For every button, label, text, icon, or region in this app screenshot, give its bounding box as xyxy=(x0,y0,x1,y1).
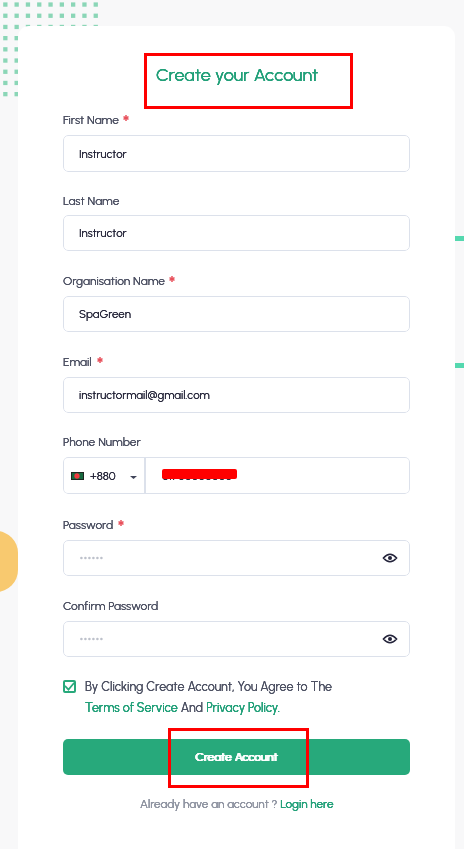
staticText: +880 xyxy=(90,469,116,483)
staticText: Confirm Password xyxy=(63,599,159,613)
staticText: Terms of Service And Privacy Policy. xyxy=(85,700,281,715)
staticText: Last Name xyxy=(63,194,120,208)
staticText: First Name xyxy=(63,113,119,127)
staticText: instructormail@gmail.com xyxy=(79,388,210,402)
staticText: Last Name xyxy=(63,194,120,208)
staticText: 01700000000 xyxy=(162,469,233,483)
staticText: Already have an account ? Login here xyxy=(140,797,334,811)
button[interactable]: Toggle password visibility xyxy=(378,627,402,651)
staticText: Password xyxy=(63,518,114,532)
button[interactable]: Toggle password visibility xyxy=(378,546,402,570)
staticText: Instructor xyxy=(79,147,127,161)
button[interactable]: Select country code xyxy=(63,457,145,494)
staticText: Create your Account xyxy=(156,64,319,86)
staticText: Create Account xyxy=(195,750,278,764)
staticText: Password xyxy=(63,518,114,532)
staticText: SpaGreen xyxy=(79,307,131,321)
staticText: Organisation Name xyxy=(63,274,165,288)
staticText: By Clicking Create Account, You Agree to… xyxy=(85,679,332,694)
staticText: Terms of Service And Privacy Policy. xyxy=(85,700,281,715)
staticText: Create your Account xyxy=(156,64,319,86)
staticText: Already have an account ? Login here xyxy=(140,797,334,811)
button[interactable]: 01700000000 xyxy=(145,457,410,494)
staticText: Create Account xyxy=(195,750,278,764)
staticText: By Clicking Create Account, You Agree to… xyxy=(85,679,332,694)
staticText: Organisation Name xyxy=(63,274,165,288)
staticText: Confirm Password xyxy=(63,599,159,613)
button[interactable]: Already have an account ? Login here xyxy=(140,797,334,811)
staticText: Create your Account xyxy=(156,64,319,86)
button[interactable]: instructormail@gmail.com xyxy=(63,377,410,413)
button[interactable]: Instructor xyxy=(63,215,410,251)
staticText: Instructor xyxy=(79,147,127,161)
staticText: Already have an account ? Login here xyxy=(140,797,334,811)
staticText: Confirm Password xyxy=(63,599,159,613)
staticText: Phone Number xyxy=(63,435,141,449)
staticText: +880 xyxy=(90,469,116,483)
staticText: Instructor xyxy=(79,147,127,161)
button[interactable]: Create Account xyxy=(63,739,410,775)
staticText: First Name xyxy=(63,113,119,127)
staticText: Phone Number xyxy=(63,435,141,449)
staticText: SpaGreen xyxy=(79,307,131,321)
staticText: instructormail@gmail.com xyxy=(79,388,210,402)
button[interactable]: Agree to terms checkbox xyxy=(63,680,76,693)
staticText: Instructor xyxy=(79,226,127,240)
staticText: instructormail@gmail.com xyxy=(79,388,210,402)
staticText: Terms of Service And Privacy Policy. xyxy=(85,700,281,715)
staticText: First Name xyxy=(63,113,119,127)
button[interactable]: Terms of Service And Privacy Policy. xyxy=(85,700,281,715)
staticText: Email xyxy=(63,355,92,369)
staticText: Email xyxy=(63,355,92,369)
button[interactable]: SpaGreen xyxy=(63,296,410,332)
staticText: Last Name xyxy=(63,194,120,208)
staticText: Create Account xyxy=(196,750,279,764)
staticText: Email xyxy=(63,355,92,369)
staticText: Phone Number xyxy=(63,435,141,449)
staticText: Password xyxy=(63,518,114,532)
button[interactable]: Instructor xyxy=(63,135,410,172)
staticText: SpaGreen xyxy=(79,307,131,321)
button[interactable]: Toggle password visibility xyxy=(63,540,410,576)
staticText: +880 xyxy=(90,469,116,483)
staticText: 01700000000 xyxy=(162,469,233,483)
button[interactable]: Toggle password visibility xyxy=(63,621,410,657)
staticText: By Clicking Create Account, You Agree to… xyxy=(85,679,332,694)
staticText: Instructor xyxy=(79,226,127,240)
staticText: Instructor xyxy=(79,226,127,240)
staticText: 01700000000 xyxy=(162,469,233,483)
staticText: Organisation Name xyxy=(63,274,165,288)
